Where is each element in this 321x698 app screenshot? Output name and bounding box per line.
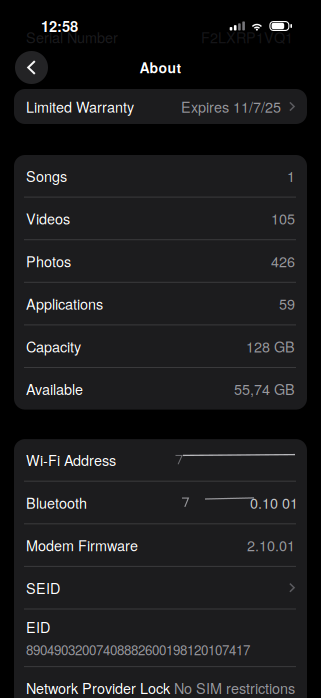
staticText: No SIM restrictions [174, 678, 295, 698]
staticText: F2LXRP1VQ1 [201, 27, 293, 47]
staticText: 59 [279, 293, 295, 314]
staticText: Applications [26, 293, 103, 314]
staticText: 55,74 GB [234, 378, 295, 399]
staticText: Bluetooth [26, 492, 87, 513]
staticText: EID [26, 616, 50, 637]
staticText: SEID [26, 577, 60, 598]
staticText: Capacity [26, 336, 81, 356]
staticText: Videos [26, 208, 70, 229]
button[interactable]: Back [15, 51, 48, 84]
staticText: Photos [26, 251, 71, 271]
button[interactable]: Limited Warranty [14, 89, 307, 124]
staticText: 1 [287, 165, 295, 186]
staticText: Serial Number [26, 27, 118, 47]
staticText: 128 GB [246, 336, 295, 356]
staticText: 12:58 [41, 15, 78, 36]
staticText: 2.10.01 [247, 535, 295, 555]
staticText: Network Provider Lock [26, 678, 170, 698]
staticText: Expires 11/7/25 [181, 96, 281, 117]
staticText: 89049032007408882600198120107417 [26, 640, 250, 659]
staticText: Available [26, 378, 83, 399]
staticText: Songs [26, 165, 67, 186]
staticText: Limited Warranty [26, 96, 134, 117]
staticText: About [139, 57, 181, 77]
staticText: 426 [271, 251, 295, 271]
button[interactable]: SEID [14, 567, 307, 608]
staticText: Wi-Fi Address [26, 450, 116, 470]
staticText: 105 [271, 208, 295, 229]
staticText: Modem Firmware [26, 535, 138, 555]
staticText: 0.10 01 [250, 492, 298, 513]
